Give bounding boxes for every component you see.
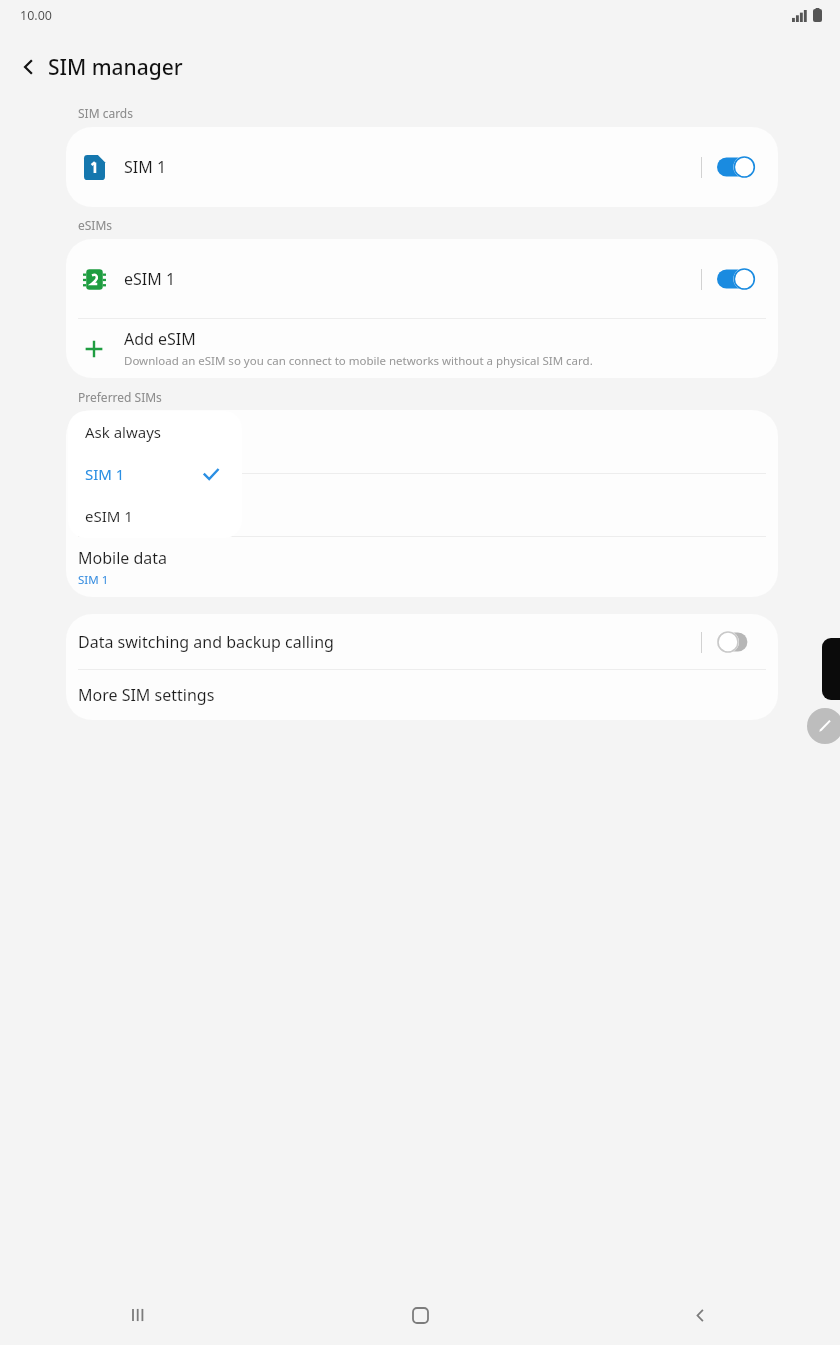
staticText: Add eSIM bbox=[124, 328, 196, 350]
staticText: More SIM settings bbox=[78, 684, 215, 706]
button[interactable] bbox=[66, 474, 778, 536]
button[interactable]: Back bbox=[12, 50, 46, 84]
button[interactable]: SIM 1 bbox=[66, 127, 778, 207]
button[interactable]: Recents bbox=[0, 1285, 280, 1345]
button[interactable]: Back bbox=[560, 1285, 840, 1345]
button[interactable]: Data switching and backup calling bbox=[66, 614, 778, 669]
staticText: SIM 1 bbox=[78, 572, 109, 588]
button[interactable]: SIM 1 bbox=[68, 453, 242, 495]
button[interactable]: SIM 1 toggle bbox=[716, 153, 756, 181]
staticText: Preferred SIMs bbox=[78, 389, 162, 405]
staticText: SIM cards bbox=[78, 105, 133, 121]
staticText: 10.00 bbox=[20, 7, 52, 24]
staticText: Mobile data bbox=[78, 547, 168, 569]
staticText: SIM manager bbox=[48, 53, 183, 82]
staticText: Ask always bbox=[85, 422, 162, 442]
button[interactable]: Ask always bbox=[68, 411, 242, 453]
button[interactable]: More SIM settings bbox=[66, 670, 778, 720]
button[interactable]: eSIM 1 bbox=[66, 239, 778, 318]
button[interactable]: Mobile data bbox=[66, 537, 778, 597]
button[interactable]: Edit bbox=[807, 708, 840, 744]
button[interactable]: Add eSIM bbox=[66, 319, 778, 378]
button[interactable]: Home bbox=[280, 1285, 560, 1345]
button[interactable] bbox=[66, 410, 778, 473]
staticText: eSIM 1 bbox=[124, 268, 176, 290]
staticText: eSIM 1 bbox=[85, 506, 133, 526]
staticText: SIM 1 bbox=[124, 156, 167, 178]
button[interactable]: Data switching toggle bbox=[716, 628, 756, 656]
button[interactable]: eSIM 1 toggle bbox=[716, 265, 756, 293]
staticText: Download an eSIM so you can connect to m… bbox=[124, 353, 593, 369]
staticText: eSIMs bbox=[78, 217, 113, 233]
staticText: SIM 1 bbox=[85, 464, 125, 484]
staticText: Data switching and backup calling bbox=[78, 631, 334, 653]
button[interactable]: eSIM 1 bbox=[68, 495, 242, 537]
